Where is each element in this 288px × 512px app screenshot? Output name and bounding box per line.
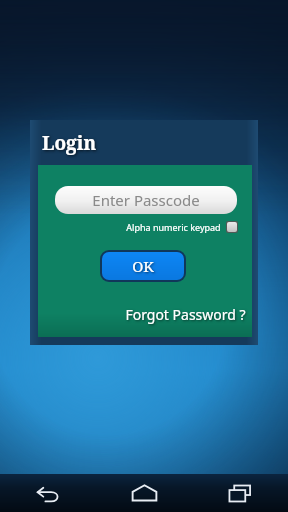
- button[interactable]: Forgot Password ?: [123, 304, 248, 325]
- button[interactable]: Back: [0, 474, 96, 512]
- other: Alpha numeric keypad: [227, 222, 237, 232]
- button[interactable]: Recent apps: [192, 474, 288, 512]
- staticText: Enter Passcode: [92, 190, 200, 210]
- staticText: Alpha numeric keypad: [126, 221, 221, 233]
- button[interactable]: Alpha numeric keypad: [124, 219, 240, 235]
- button[interactable]: Enter Passcode: [55, 186, 237, 214]
- button[interactable]: OK: [102, 252, 184, 280]
- staticText: Forgot Password ?: [125, 305, 246, 324]
- staticText: OK: [132, 256, 154, 276]
- staticText: Login: [42, 130, 97, 156]
- button[interactable]: Home: [96, 474, 192, 512]
